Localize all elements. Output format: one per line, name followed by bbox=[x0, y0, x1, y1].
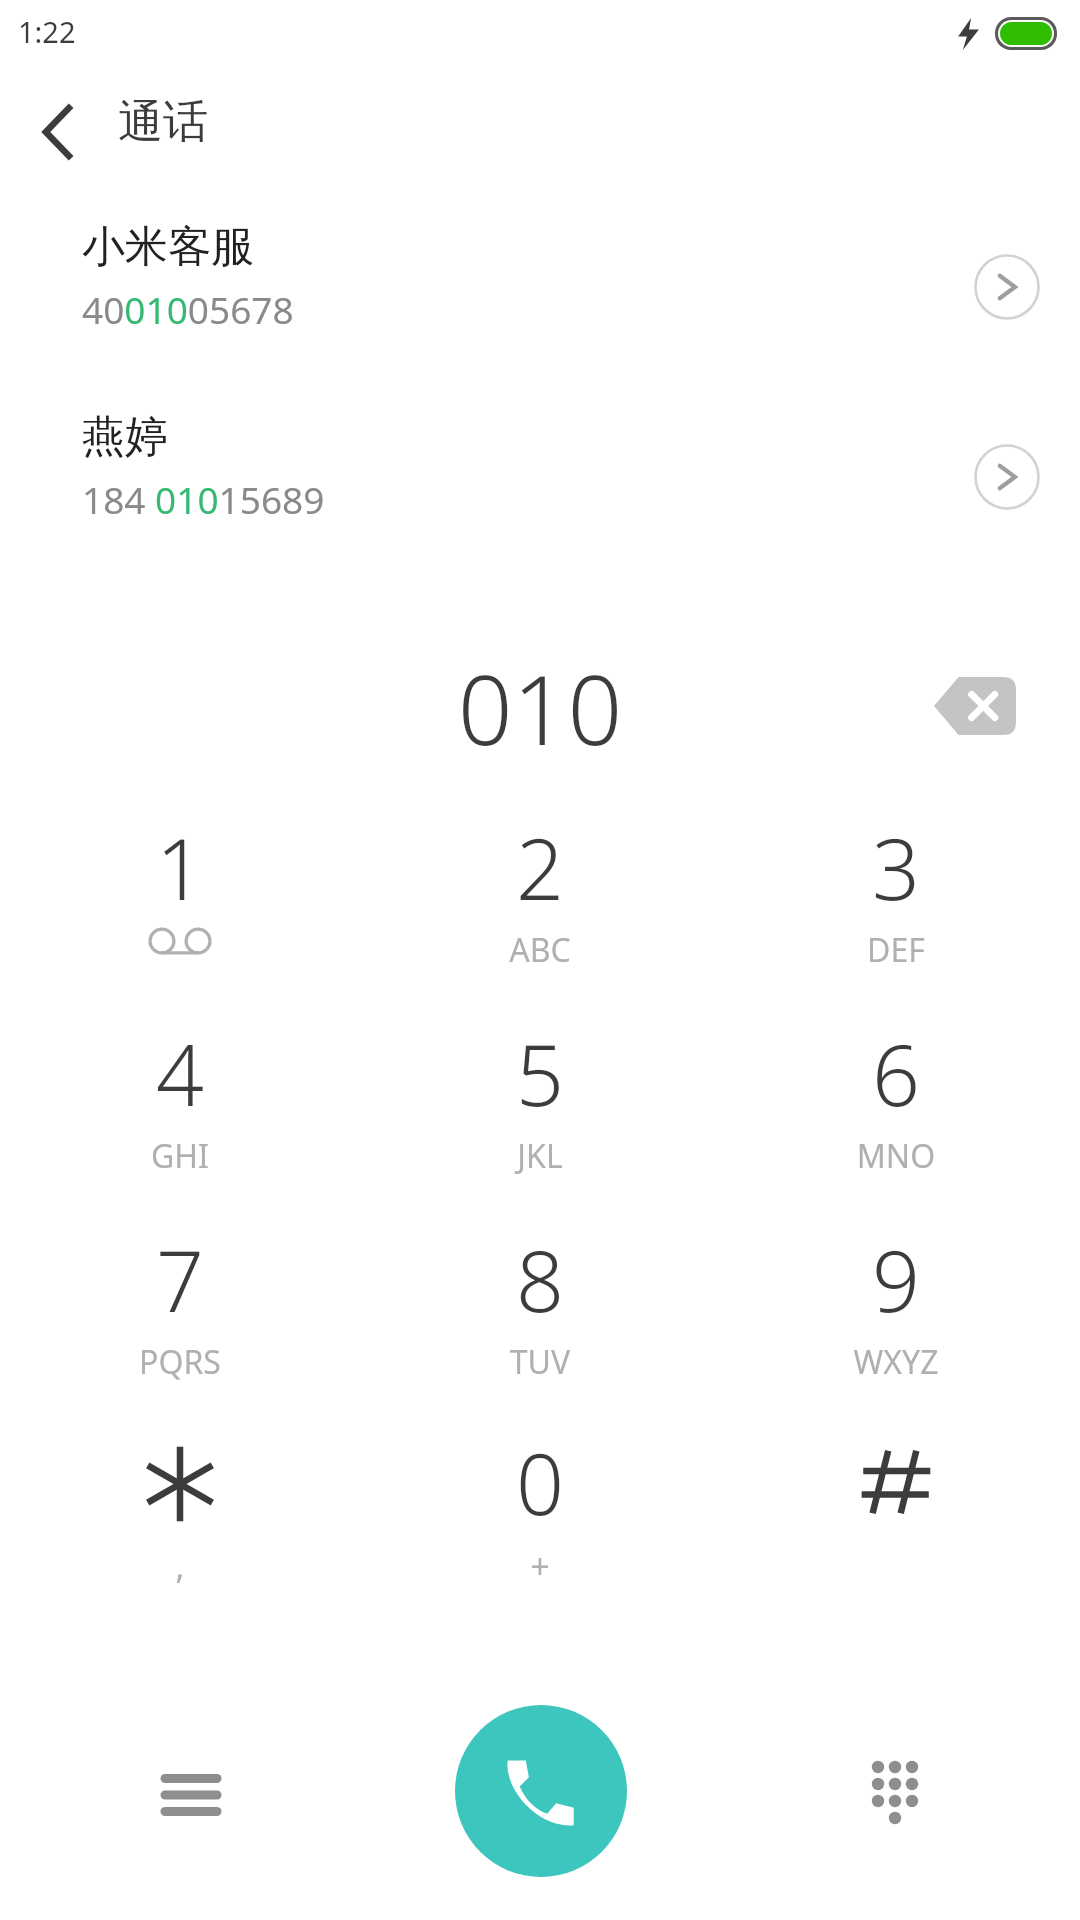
staticText: ABC bbox=[390, 928, 690, 972]
staticText: 燕婷 bbox=[82, 410, 168, 464]
staticText: PQRS bbox=[30, 1340, 330, 1384]
button[interactable]: Call log bbox=[136, 1740, 246, 1850]
button[interactable]: 6 bbox=[746, 1016, 1046, 1216]
button[interactable]: 燕婷 bbox=[0, 384, 1080, 548]
staticText: 184 01015689 bbox=[82, 474, 325, 524]
staticText: 小米客服 bbox=[82, 220, 254, 274]
button[interactable]: 4 bbox=[30, 1016, 330, 1216]
staticText: 1:22 bbox=[18, 12, 76, 51]
button[interactable]: Back bbox=[14, 88, 102, 176]
staticText: 1 bbox=[30, 810, 330, 924]
staticText: JKL bbox=[390, 1134, 690, 1178]
button[interactable]: Backspace bbox=[900, 656, 1050, 756]
button[interactable]: Call bbox=[455, 1705, 627, 1877]
staticText: 8 bbox=[390, 1222, 690, 1336]
staticText: WXYZ bbox=[746, 1340, 1046, 1384]
button[interactable]: 0 bbox=[390, 1425, 690, 1625]
staticText: 9 bbox=[746, 1222, 1046, 1336]
staticText: 4 bbox=[30, 1016, 330, 1130]
staticText: DEF bbox=[746, 928, 1046, 972]
button[interactable]: Details bbox=[963, 243, 1051, 331]
button[interactable]: Details bbox=[963, 433, 1051, 521]
button[interactable]: , bbox=[30, 1425, 330, 1625]
button[interactable]: 5 bbox=[390, 1016, 690, 1216]
staticText: GHI bbox=[30, 1134, 330, 1178]
staticText: 2 bbox=[390, 810, 690, 924]
staticText: 010 bbox=[0, 642, 1080, 773]
staticText: 5 bbox=[390, 1016, 690, 1130]
button[interactable]: 3 bbox=[746, 810, 1046, 1010]
staticText: TUV bbox=[390, 1340, 690, 1384]
button[interactable]: 9 bbox=[746, 1222, 1046, 1422]
staticText: MNO bbox=[746, 1134, 1046, 1178]
staticText: + bbox=[390, 1543, 690, 1589]
staticText: 0 bbox=[390, 1425, 690, 1539]
staticText: 4001005678 bbox=[82, 284, 294, 334]
button[interactable]: 7 bbox=[30, 1222, 330, 1422]
button[interactable]: 小米客服 bbox=[0, 194, 1080, 358]
staticText: 7 bbox=[30, 1222, 330, 1336]
staticText: 6 bbox=[746, 1016, 1046, 1130]
staticText: , bbox=[30, 1543, 330, 1589]
staticText: 3 bbox=[746, 810, 1046, 924]
button[interactable] bbox=[746, 1425, 1046, 1625]
staticText: 通话 bbox=[118, 94, 208, 151]
button[interactable]: Dialpad bbox=[840, 1740, 950, 1850]
button[interactable]: 1 bbox=[30, 810, 330, 1010]
button[interactable]: 8 bbox=[390, 1222, 690, 1422]
button[interactable]: 2 bbox=[390, 810, 690, 1010]
